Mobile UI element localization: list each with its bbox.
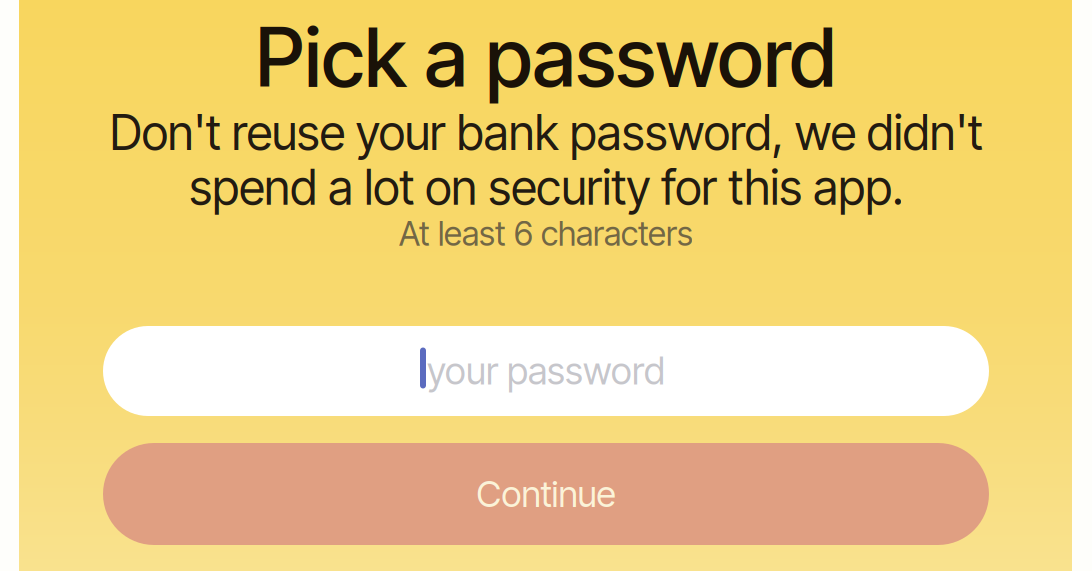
staticText: Continue	[476, 472, 615, 516]
staticText: At least 6 characters	[399, 213, 693, 254]
staticText: Pick a password	[255, 8, 836, 106]
button[interactable]: your password	[103, 326, 989, 416]
button[interactable]: Continue	[103, 443, 989, 545]
staticText: your password	[427, 348, 665, 394]
staticText: Don't reuse your bank password, we didn'…	[109, 104, 982, 216]
